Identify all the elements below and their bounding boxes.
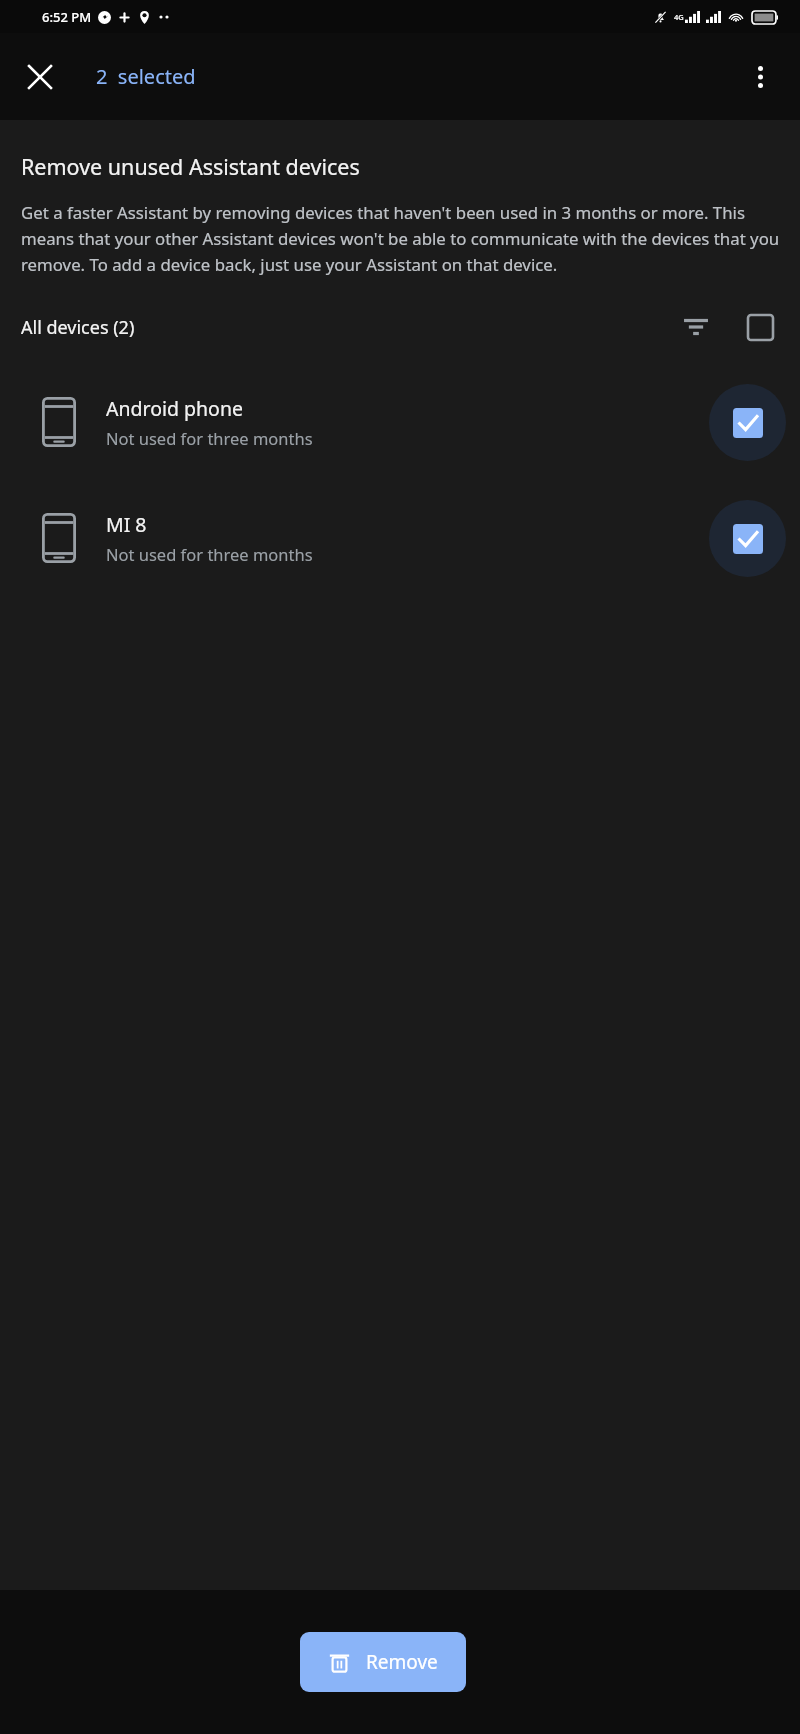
staticText: Android phone [106,395,243,422]
button[interactable]: More options [734,51,786,103]
button[interactable]: Filter [670,301,722,353]
staticText: 6:52 PM [42,8,92,26]
button[interactable]: Close [14,51,66,103]
button[interactable]: MI 8 [0,490,800,586]
button[interactable]: Selected [709,500,786,577]
staticText: Not used for three months [106,543,313,565]
staticText: MI 8 [106,511,147,538]
staticText: Get a faster Assistant by removing devic… [21,201,787,276]
button[interactable]: Android phone [0,374,800,470]
staticText: Remove [366,1649,438,1675]
staticText: 2 selected [96,63,196,90]
staticText: Remove unused Assistant devices [21,152,360,181]
button[interactable]: Select all [734,301,786,353]
staticText: Not used for three months [106,427,313,449]
staticText: All devices (2) [21,315,135,340]
staticText: 4G [674,12,684,22]
button[interactable]: Selected [709,384,786,461]
button[interactable]: Remove [300,1632,466,1692]
